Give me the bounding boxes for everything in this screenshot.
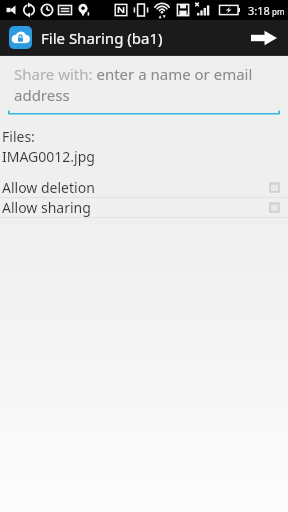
button[interactable]: Allow sharing	[0, 198, 288, 217]
staticText: Allow deletion	[2, 178, 95, 197]
staticText: File Sharing (ba1)	[41, 28, 163, 48]
other: App icon	[9, 26, 32, 49]
staticText: Share with: enter a name or email addres…	[14, 64, 278, 106]
staticText: pm	[272, 6, 285, 17]
button[interactable]: Share with: enter a name or email addres…	[8, 64, 280, 115]
button[interactable]: Allow deletion	[0, 178, 288, 197]
staticText: Allow sharing	[2, 198, 91, 217]
staticText: IMAG0012.jpg	[2, 147, 95, 166]
staticText: Files:	[2, 127, 35, 146]
staticText: 3:18	[248, 3, 270, 18]
button[interactable]: Send	[240, 20, 288, 55]
